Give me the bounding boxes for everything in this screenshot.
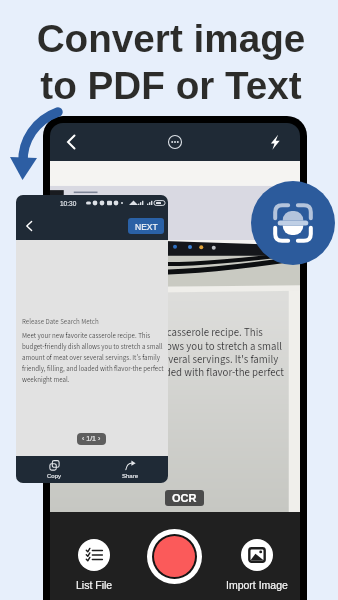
- button[interactable]: Import Image: [225, 539, 289, 591]
- staticText: 10:30: [60, 200, 77, 207]
- staticText: Share: [122, 473, 139, 480]
- staticText: Meet your new favorite casserole recipe.…: [22, 331, 164, 385]
- staticText: Release Date Search Metch: [22, 317, 99, 327]
- staticText: Copy: [47, 473, 62, 480]
- staticText: Convert image to PDF or Text: [2, 17, 338, 107]
- staticText: Import Image: [226, 579, 288, 591]
- button[interactable]: List File: [66, 539, 122, 591]
- button[interactable]: Back: [20, 217, 38, 235]
- button[interactable]: Scan document: [251, 181, 335, 265]
- button[interactable]: NEXT: [128, 218, 164, 234]
- button[interactable]: OCR: [165, 490, 204, 506]
- button[interactable]: Capture photo: [147, 529, 202, 584]
- button[interactable]: More options: [162, 129, 188, 155]
- button[interactable]: Flash: [262, 129, 288, 155]
- button[interactable]: Back: [58, 129, 84, 155]
- staticText: List File: [76, 579, 113, 591]
- staticText: NEXT: [135, 222, 158, 231]
- staticText: OCR: [172, 492, 197, 504]
- button[interactable]: Copy: [16, 456, 92, 483]
- staticText: ‹ 1/1 ›: [82, 435, 101, 443]
- staticText: Meet your new favorite casserole recipe.…: [62, 325, 285, 380]
- button[interactable]: ‹ 1/1 ›: [77, 433, 106, 445]
- button[interactable]: Share: [92, 456, 168, 483]
